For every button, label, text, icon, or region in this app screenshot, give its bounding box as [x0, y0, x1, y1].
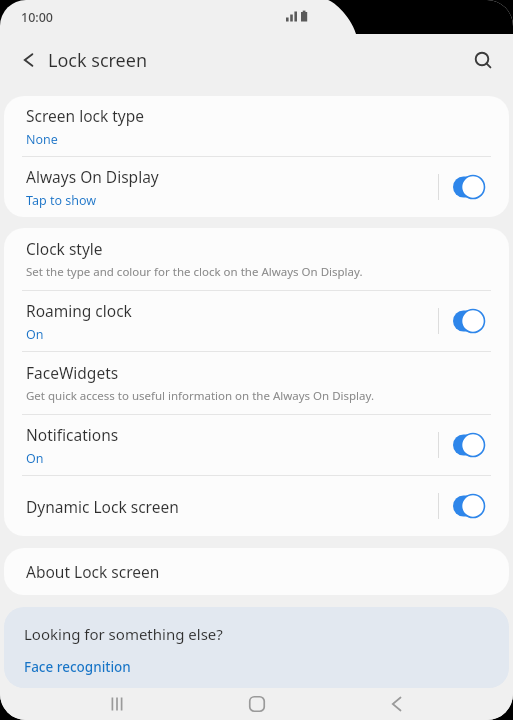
button[interactable]: Toggle Dynamic Lock screen: [453, 494, 487, 518]
button[interactable]: Face recognition: [24, 658, 131, 676]
staticText: 10:00: [21, 9, 54, 26]
staticText: Screen lock type: [26, 105, 145, 126]
button[interactable]: About Lock screen: [4, 548, 509, 595]
staticText: Dynamic Lock screen: [26, 496, 179, 517]
staticText: Lock screen: [48, 48, 148, 73]
button[interactable]: Home: [235, 688, 279, 720]
staticText: Get quick access to useful information o…: [26, 388, 374, 404]
staticText: On: [26, 326, 44, 343]
button[interactable]: Dynamic Lock screen: [4, 476, 509, 536]
button[interactable]: Roaming clock: [4, 291, 509, 351]
button[interactable]: Screen lock type: [4, 96, 509, 156]
button[interactable]: Recents: [95, 688, 139, 720]
staticText: FaceWidgets: [26, 362, 119, 383]
staticText: Looking for something else?: [24, 624, 223, 644]
staticText: Tap to show: [26, 192, 97, 209]
button[interactable]: Clock style: [4, 228, 509, 290]
button[interactable]: Toggle Always On Display: [453, 175, 487, 199]
button[interactable]: FaceWidgets: [4, 352, 509, 414]
staticText: About Lock screen: [26, 561, 160, 582]
staticText: Set the type and colour for the clock on…: [26, 264, 363, 280]
button[interactable]: Back: [10, 42, 46, 78]
staticText: Always On Display: [26, 166, 159, 187]
button[interactable]: Always On Display: [4, 157, 509, 217]
staticText: None: [26, 131, 58, 148]
button[interactable]: Toggle Roaming clock: [453, 309, 487, 333]
button[interactable]: Notifications: [4, 415, 509, 475]
staticText: On: [26, 450, 44, 467]
staticText: Roaming clock: [26, 300, 132, 321]
button[interactable]: Toggle Notifications: [453, 433, 487, 457]
button[interactable]: Search: [465, 42, 501, 78]
staticText: Face recognition: [24, 658, 131, 676]
staticText: Clock style: [26, 238, 103, 259]
staticText: Notifications: [26, 424, 119, 445]
button[interactable]: Back: [374, 688, 418, 720]
